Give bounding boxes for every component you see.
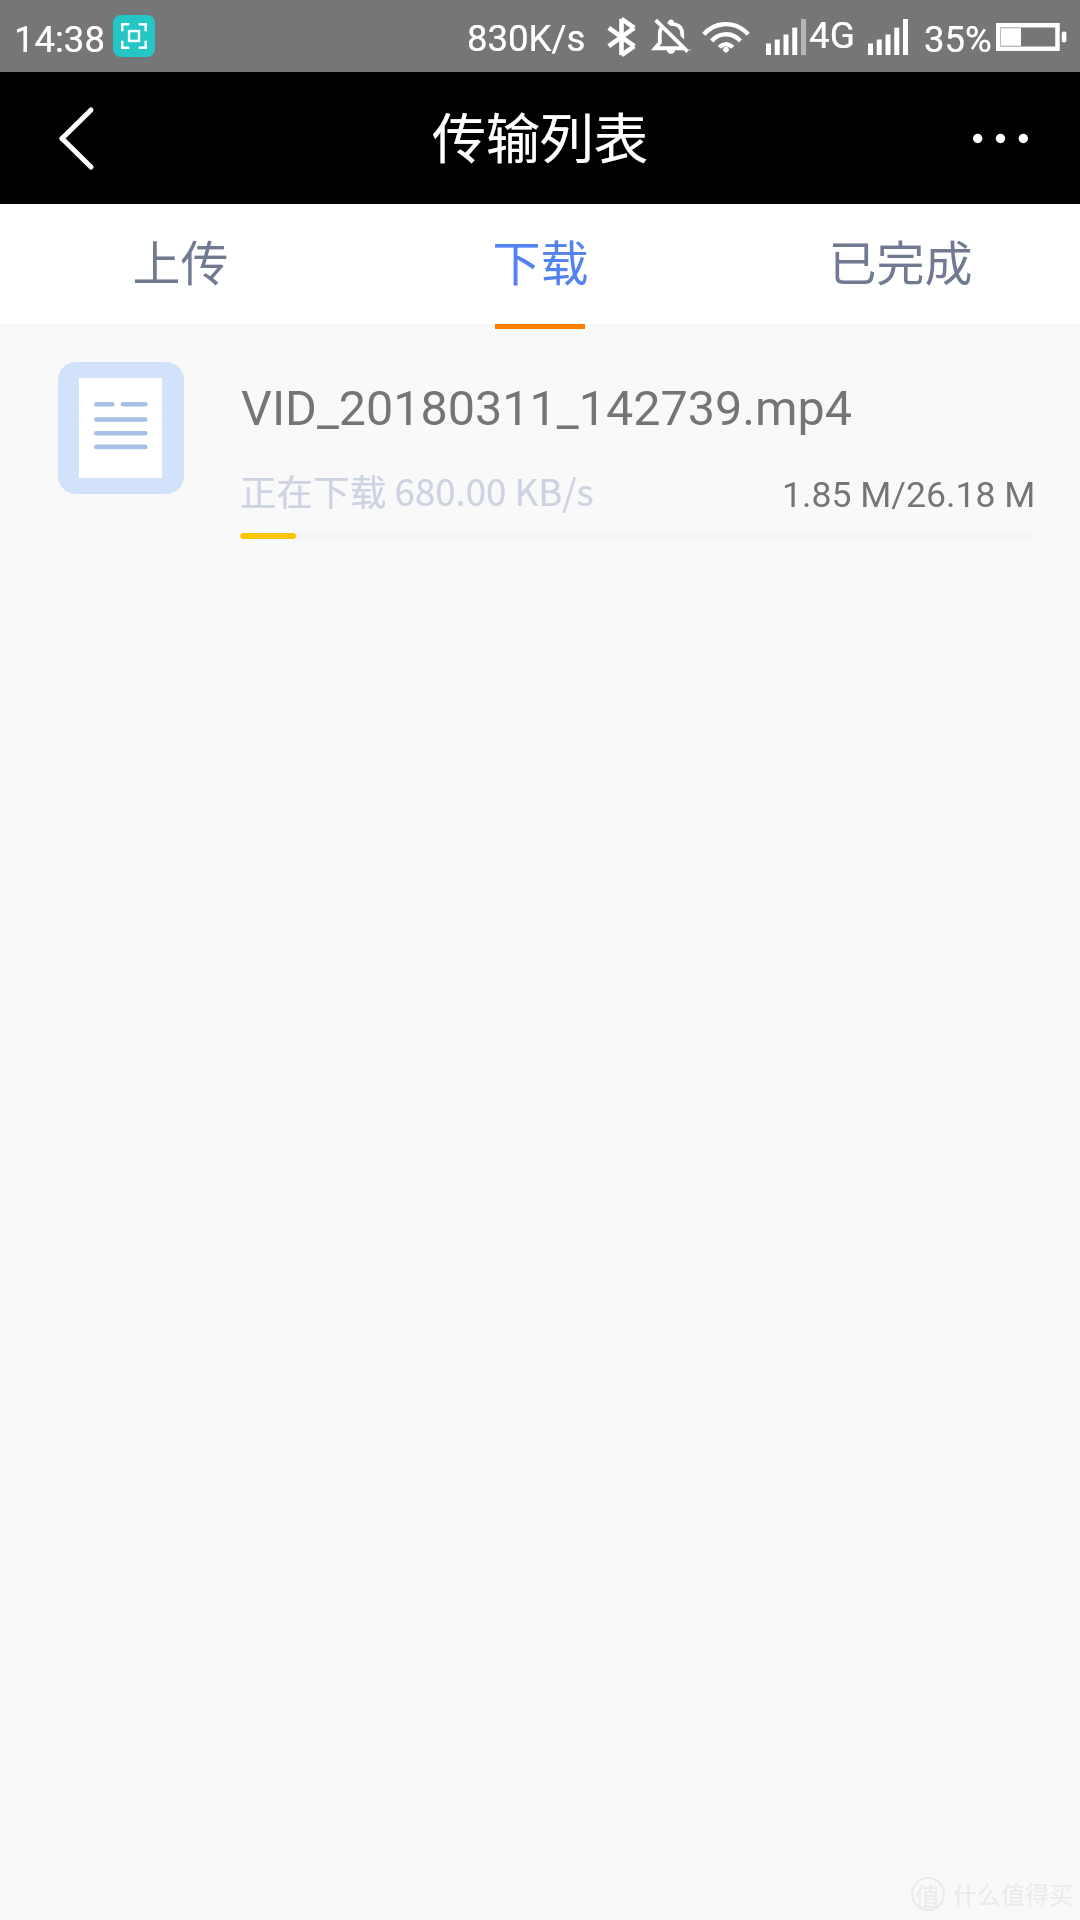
staticText: 1.85 M/26.18 M xyxy=(782,474,1036,516)
button[interactable]: Back xyxy=(0,72,150,204)
staticText: 下载 xyxy=(492,225,589,295)
button[interactable]: 上传 xyxy=(0,204,360,324)
button[interactable]: 已完成 xyxy=(720,204,1080,324)
staticText: 已完成 xyxy=(828,225,973,295)
staticText: 830K/s xyxy=(467,17,586,60)
staticText: 值 xyxy=(915,1877,941,1911)
button[interactable]: VID_20180311_142739.mp4 xyxy=(0,324,1080,554)
button[interactable]: 下载 xyxy=(360,204,720,324)
staticText: 上传 xyxy=(132,225,229,295)
staticText: 35% xyxy=(924,18,992,61)
staticText: 传输列表 xyxy=(432,96,648,174)
button[interactable]: More options xyxy=(930,72,1080,204)
staticText: VID_20180311_142739.mp4 xyxy=(241,380,853,437)
staticText: 14:38 xyxy=(14,18,105,61)
staticText: 什么值得买 xyxy=(953,1876,1073,1911)
staticText: 正在下载 680.00 KB/s xyxy=(240,464,594,517)
staticText: 4G xyxy=(809,14,855,57)
